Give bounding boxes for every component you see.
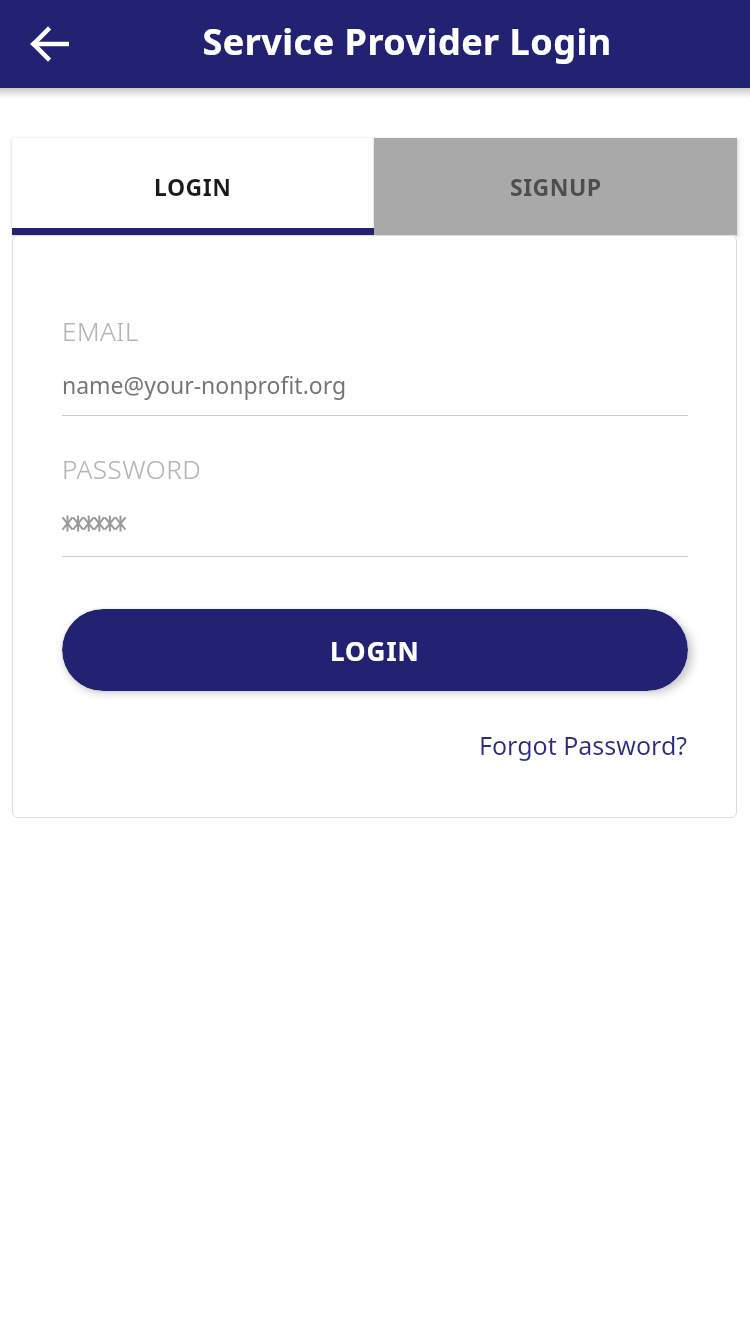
button[interactable]: Forgot Password? [479, 728, 688, 762]
button[interactable]: SIGNUP [374, 138, 737, 235]
staticText: LOGIN [154, 171, 232, 202]
staticText: name@your-nonprofit.org [62, 369, 347, 400]
staticText: LOGIN [330, 633, 420, 668]
staticText: SIGNUP [510, 171, 602, 202]
button[interactable] [24, 16, 80, 72]
button[interactable]: LOGIN [12, 138, 374, 235]
staticText: PASSWORD [62, 451, 202, 486]
staticText: Service Provider Login [64, 17, 750, 66]
staticText: EMAIL [62, 313, 139, 348]
button[interactable]: LOGIN [62, 609, 688, 691]
